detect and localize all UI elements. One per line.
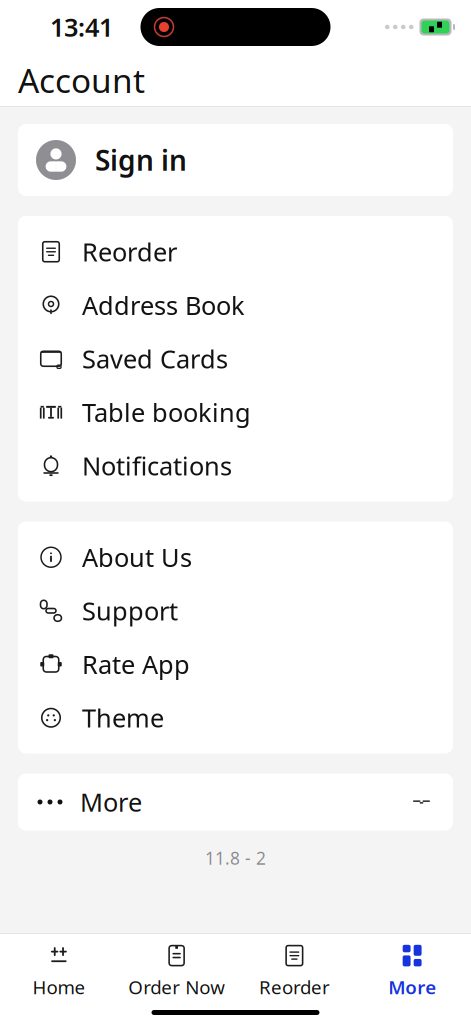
staticText: Home bbox=[32, 975, 85, 999]
staticText: More bbox=[80, 785, 142, 819]
button[interactable]: Reorder bbox=[235, 942, 353, 1000]
staticText: Notifications bbox=[82, 449, 232, 482]
staticText: Table booking bbox=[82, 395, 251, 429]
button[interactable]: Theme bbox=[18, 691, 453, 744]
staticText: Reorder bbox=[259, 975, 330, 999]
staticText: Sign in bbox=[95, 141, 187, 179]
staticText: 13:41 bbox=[50, 10, 113, 44]
staticText: Rate App bbox=[82, 647, 190, 681]
button[interactable]: Home bbox=[0, 942, 118, 1000]
button[interactable]: More bbox=[353, 942, 471, 1000]
staticText: More bbox=[388, 975, 436, 999]
button[interactable]: Rate App bbox=[18, 637, 453, 691]
button[interactable]: Sign in bbox=[18, 124, 453, 196]
button[interactable]: Support bbox=[18, 584, 453, 637]
button[interactable]: Reorder bbox=[18, 225, 453, 278]
button[interactable]: More bbox=[18, 773, 453, 830]
staticText: Order Now bbox=[128, 975, 225, 999]
staticText: Saved Cards bbox=[82, 342, 228, 375]
staticText: Theme bbox=[82, 701, 164, 734]
staticText: 11.8 - 2 bbox=[205, 846, 266, 869]
staticText: About Us bbox=[82, 540, 192, 574]
button[interactable]: Order Now bbox=[118, 942, 236, 1000]
staticText: Reorder bbox=[82, 235, 177, 268]
button[interactable]: About Us bbox=[18, 530, 453, 584]
staticText: Account bbox=[18, 58, 145, 102]
staticText: Support bbox=[82, 594, 178, 627]
button[interactable]: Saved Cards bbox=[18, 332, 453, 385]
button[interactable]: Address Book bbox=[18, 278, 453, 332]
staticText: Address Book bbox=[82, 288, 245, 322]
button[interactable]: Table booking bbox=[18, 385, 453, 439]
button[interactable]: Notifications bbox=[18, 439, 453, 492]
